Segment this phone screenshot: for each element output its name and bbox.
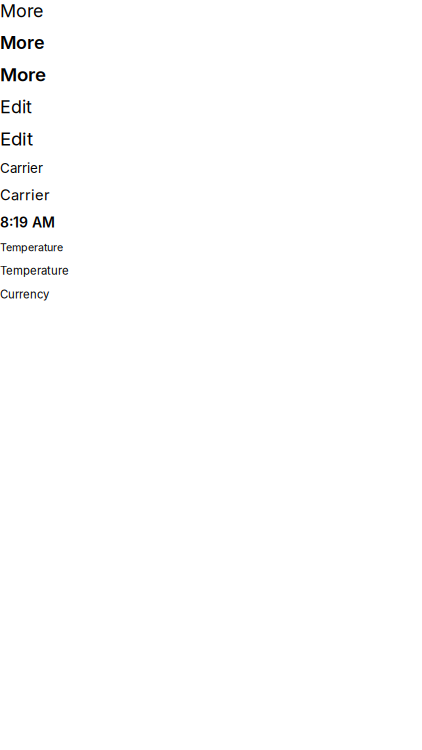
staticText: More <box>0 32 45 53</box>
staticText: Temperature <box>0 264 69 277</box>
staticText: Carrier <box>0 160 43 176</box>
staticText: 8:19 AM <box>0 214 55 231</box>
staticText: Edit <box>0 127 33 150</box>
staticText: Temperature <box>0 241 63 254</box>
staticText: More <box>0 63 46 86</box>
staticText: More <box>0 0 43 22</box>
staticText: Edit <box>0 96 32 117</box>
staticText: Carrier <box>0 186 50 204</box>
staticText: Currency <box>0 287 49 301</box>
